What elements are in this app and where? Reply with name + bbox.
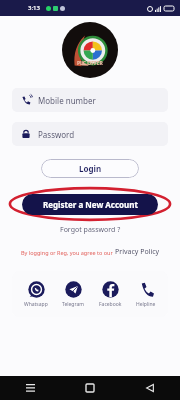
staticText: Whatsapp (24, 301, 48, 308)
button[interactable]: Password (12, 122, 168, 146)
staticText: Register a New Account (43, 199, 138, 210)
staticText: 3:13 (28, 4, 40, 12)
button[interactable]: Forgot password ? (60, 225, 121, 235)
button[interactable]: Home (60, 376, 120, 400)
staticText: PLC OFFER (77, 60, 103, 67)
staticText: By logging or Reg, you agree to our (21, 249, 115, 256)
staticText: Facebook (99, 301, 122, 308)
button[interactable]: Recents (0, 376, 60, 400)
staticText: Telegram (62, 301, 84, 308)
button[interactable]: Back (120, 376, 180, 400)
button[interactable]: Helpline (133, 281, 159, 308)
button[interactable]: Telegram (59, 281, 87, 308)
button[interactable]: Login (41, 159, 139, 178)
staticText: Helpline (136, 301, 156, 308)
staticText: Login (79, 163, 102, 174)
staticText: Mobile number (38, 95, 96, 106)
staticText: Password (38, 129, 75, 140)
button[interactable]: Mobile number (12, 88, 168, 112)
button[interactable]: Facebook (96, 281, 125, 308)
button[interactable]: Whatsapp (21, 281, 51, 308)
button[interactable]: Privacy Policy (115, 247, 160, 257)
button[interactable]: Register a New Account (22, 194, 158, 215)
